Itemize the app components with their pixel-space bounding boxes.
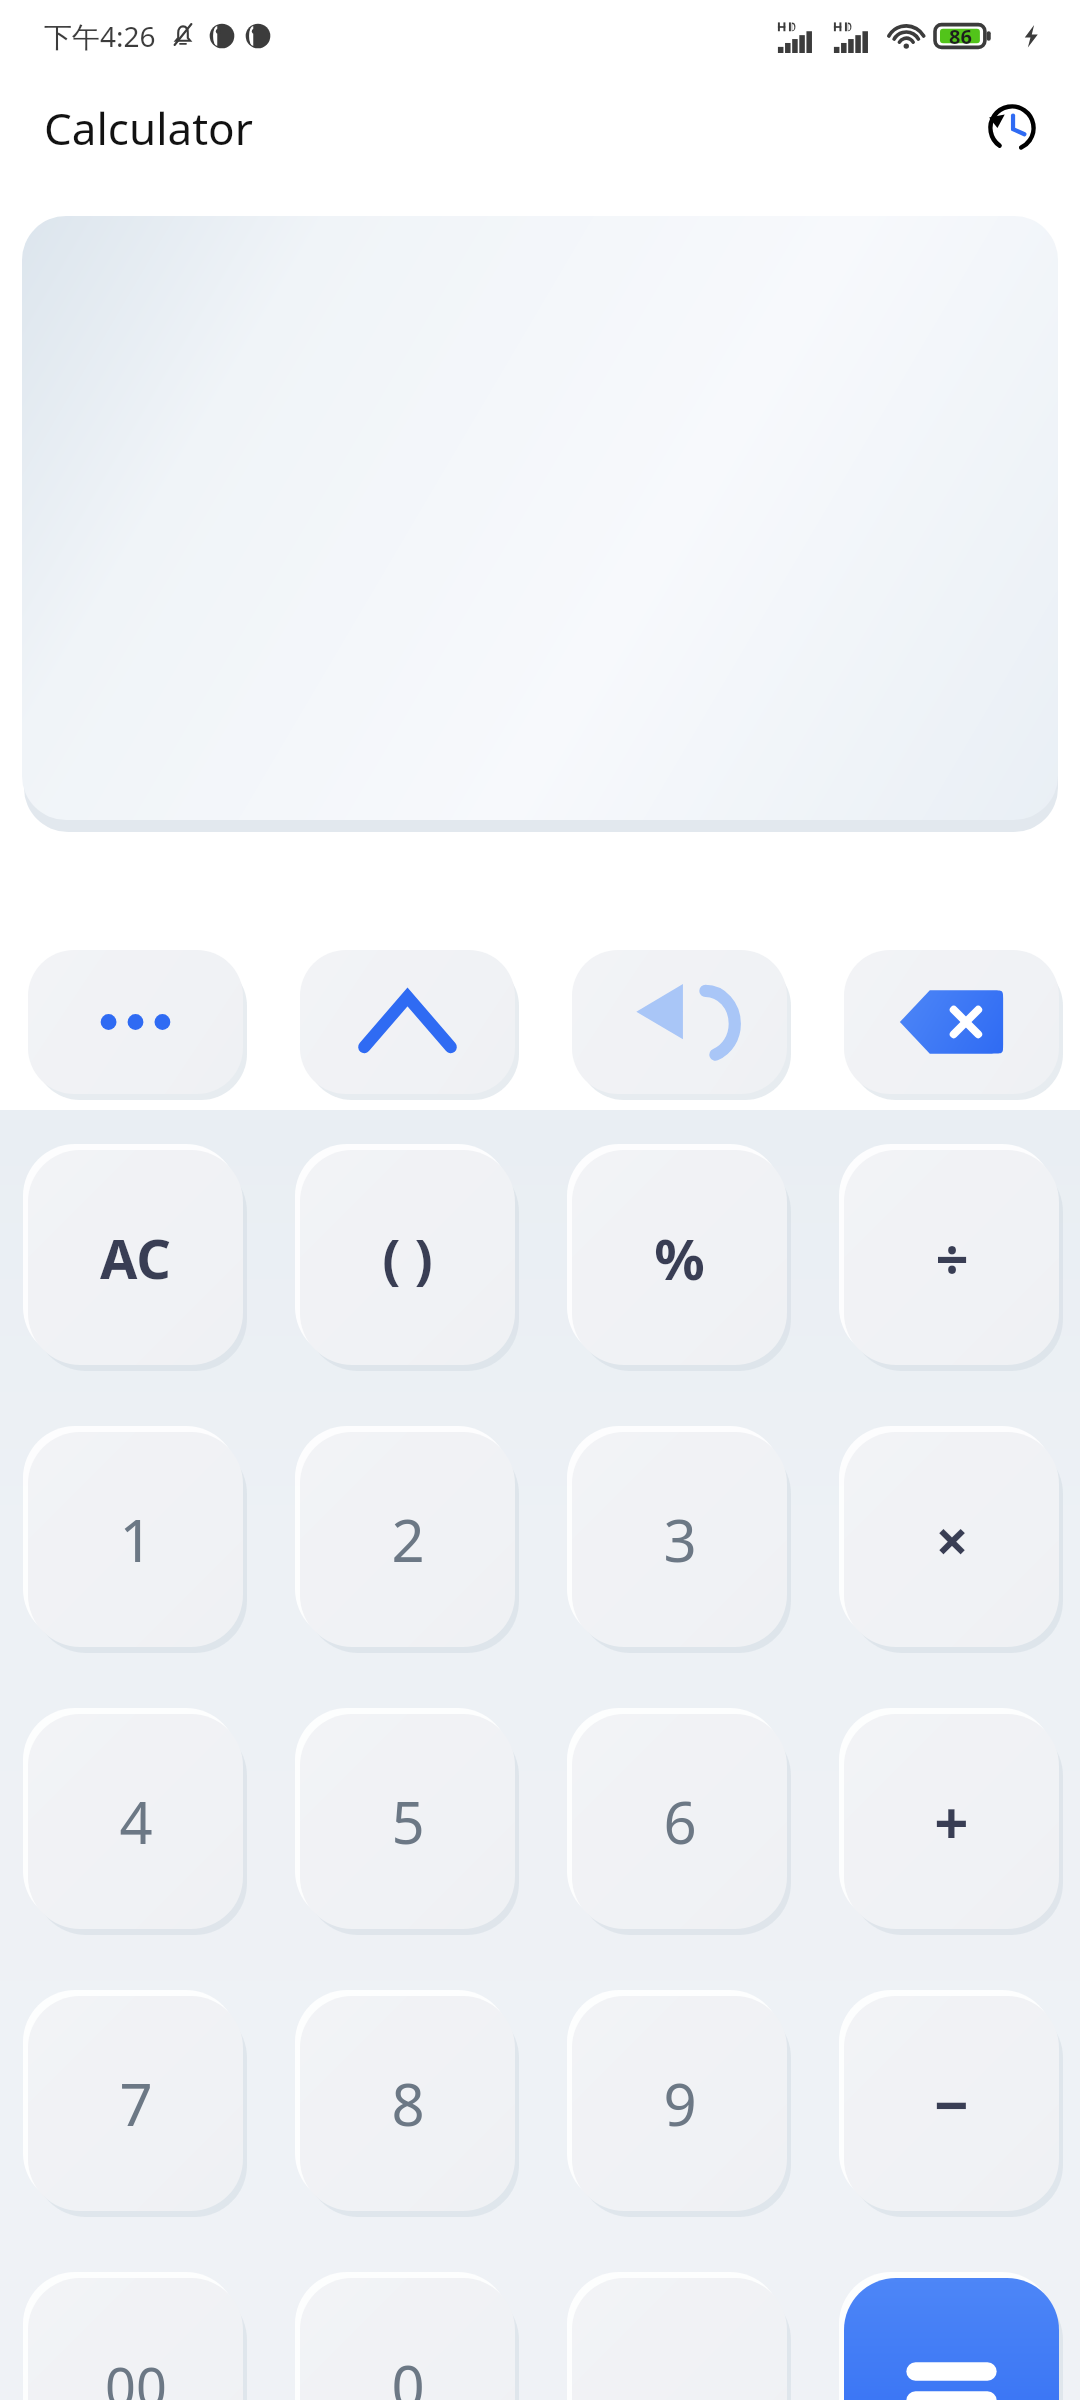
button[interactable]: 7 (28, 1996, 243, 2211)
staticText: % (654, 1220, 705, 1296)
staticText: − (934, 2063, 969, 2145)
staticText: × (935, 1500, 969, 1579)
button[interactable]: − (844, 1996, 1059, 2211)
button[interactable]: 5 (300, 1714, 515, 1929)
button[interactable]: 9 (572, 1996, 787, 2211)
staticText: 1 (119, 1500, 153, 1579)
staticText: 0 (391, 2346, 425, 2400)
staticText: 7 (119, 2064, 153, 2143)
staticText: 2 (391, 1500, 425, 1579)
staticText: 5 (391, 1782, 425, 1861)
button[interactable]: Backspace (844, 950, 1059, 1094)
staticText: ( ) (382, 1221, 433, 1295)
staticText: 9 (663, 2064, 697, 2143)
button[interactable]: 6 (572, 1714, 787, 1929)
button[interactable]: More options (28, 950, 243, 1094)
button[interactable]: Expand (300, 950, 515, 1094)
button[interactable]: 3 (572, 1432, 787, 1647)
button[interactable]: 4 (28, 1714, 243, 1929)
button[interactable]: Undo (572, 950, 787, 1094)
button[interactable]: Equals (844, 2278, 1059, 2400)
button[interactable]: 1 (28, 1432, 243, 1647)
staticText: 8 (391, 2064, 425, 2143)
staticText: + (934, 1781, 969, 1863)
button[interactable]: × (844, 1432, 1059, 1647)
button[interactable]: 8 (300, 1996, 515, 2211)
button[interactable]: ÷ (844, 1150, 1059, 1365)
button[interactable]: + (844, 1714, 1059, 1929)
button[interactable]: % (572, 1150, 787, 1365)
staticText: 3 (663, 1500, 697, 1579)
button[interactable] (22, 216, 1058, 826)
button[interactable]: ( ) (300, 1150, 515, 1365)
staticText: 86 (949, 23, 972, 50)
button[interactable]: AC (28, 1150, 243, 1365)
staticText: 00 (105, 2349, 167, 2400)
staticText: 4 (119, 1782, 153, 1861)
staticText: ÷ (935, 1218, 969, 1297)
staticText: 下午4:26 (44, 17, 156, 55)
button[interactable]: History (980, 96, 1044, 160)
button[interactable]: 2 (300, 1432, 515, 1647)
button[interactable]: 0 (300, 2278, 515, 2400)
staticText: 6 (663, 1782, 697, 1861)
button[interactable]: 00 (28, 2278, 243, 2400)
staticText: AC (100, 1221, 171, 1295)
staticText: Calculator (44, 98, 253, 158)
